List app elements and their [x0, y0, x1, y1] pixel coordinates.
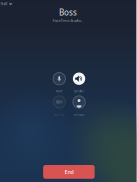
staticText: mute: [56, 89, 63, 93]
staticText: End: [64, 168, 73, 175]
button[interactable]: mute: [50, 72, 68, 93]
staticText: Boss: [59, 7, 77, 18]
button[interactable]: speaker: [70, 72, 88, 93]
button[interactable]: End: [43, 165, 95, 179]
staticText: FaceTime: [54, 113, 65, 116]
staticText: speaker: [74, 89, 84, 93]
staticText: contacts: [74, 113, 84, 116]
staticText: FaceTime Audio…: [52, 18, 83, 23]
button[interactable]: contacts: [70, 96, 88, 116]
button[interactable]: FaceTime: [50, 96, 68, 116]
staticText: 9:41: [1, 1, 8, 6]
